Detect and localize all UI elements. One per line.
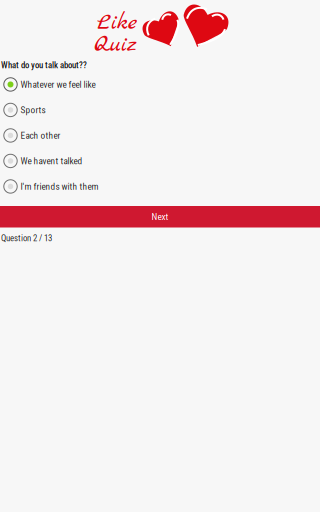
staticText: Question 2 / 13 [1,233,52,243]
button[interactable]: I'm friends with them [0,174,160,199]
staticText: We havent talked [20,155,82,166]
staticText: I'm friends with them [20,181,98,192]
button[interactable]: Sports [0,97,160,123]
staticText: Each other [20,130,60,141]
staticText: Sports [20,104,45,115]
button[interactable]: Each other [0,123,160,148]
staticText: Next [151,211,168,222]
staticText: Like [97,8,137,38]
button[interactable]: Next [0,206,320,227]
button[interactable]: We havent talked [0,148,160,174]
staticText: What do you talk about?? [1,60,87,70]
button[interactable]: Whatever we feel like [0,72,160,97]
staticText: Quiz [94,30,137,60]
staticText: Whatever we feel like [20,79,95,90]
